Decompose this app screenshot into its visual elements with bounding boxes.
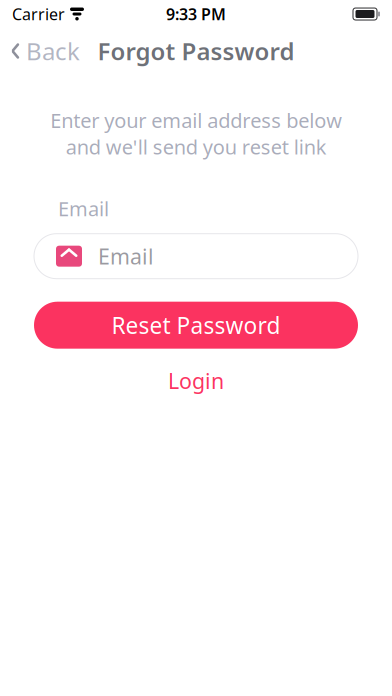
button[interactable]: Login [146, 359, 246, 403]
staticText: Email [58, 195, 109, 222]
staticText: Carrier [12, 3, 65, 25]
staticText: Forgot Password [97, 35, 294, 67]
button[interactable]: Reset Password [34, 302, 358, 349]
button[interactable]: Email [34, 234, 358, 279]
staticText: Email [98, 242, 154, 270]
staticText: 9:33 PM [166, 3, 226, 25]
button[interactable]: Back [0, 29, 90, 73]
staticText: Login [168, 367, 224, 395]
staticText: Reset Password [111, 310, 280, 340]
staticText: Enter your email address below and we'll… [50, 107, 342, 160]
staticText: Back [26, 35, 80, 67]
